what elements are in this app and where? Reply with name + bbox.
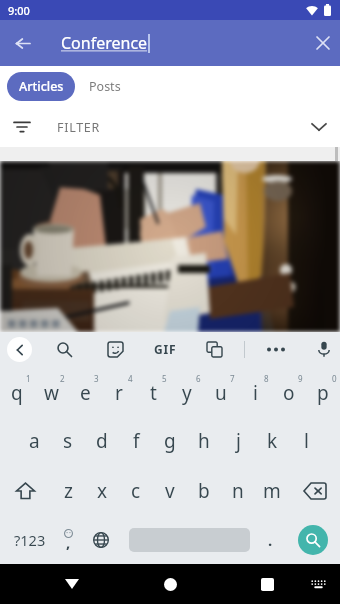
staticText: b	[198, 478, 210, 504]
button[interactable]: Space	[114, 518, 264, 562]
button[interactable]: m	[255, 466, 289, 516]
staticText: v	[165, 478, 175, 504]
staticText: k	[267, 428, 278, 454]
staticText: f	[133, 428, 140, 454]
button[interactable]: o	[272, 366, 306, 416]
button[interactable]: ?123	[7, 518, 52, 562]
staticText: 4	[128, 373, 133, 384]
button[interactable]: Home	[152, 566, 188, 602]
button[interactable]: FILTER	[0, 107, 340, 147]
button[interactable]: Recent apps	[249, 566, 285, 602]
staticText: h	[198, 428, 210, 454]
button[interactable]: t	[136, 366, 170, 416]
button[interactable]: Switch keyboard	[303, 569, 333, 599]
staticText: 3	[94, 373, 99, 384]
staticText: Posts	[89, 78, 121, 95]
staticText: i	[253, 380, 258, 406]
button[interactable]: q	[0, 366, 34, 416]
button[interactable]: Change language	[88, 518, 114, 562]
button[interactable]: GIF	[148, 336, 182, 362]
button[interactable]: d	[85, 416, 119, 466]
button[interactable]: b	[187, 466, 221, 516]
button[interactable]: z	[51, 466, 85, 516]
button[interactable]: Back	[54, 566, 90, 602]
button[interactable]: a	[17, 416, 51, 466]
button[interactable]: Backspace	[289, 466, 340, 516]
button[interactable]: c	[119, 466, 153, 516]
button[interactable]: n	[221, 466, 255, 516]
button[interactable]: j	[221, 416, 255, 466]
staticText: g	[164, 428, 176, 454]
button[interactable]: r	[102, 366, 136, 416]
staticText: s	[63, 428, 73, 454]
button[interactable]: i	[238, 366, 272, 416]
button[interactable]: Search	[298, 525, 328, 555]
button[interactable]: l	[289, 416, 323, 466]
staticText: d	[96, 428, 108, 454]
button[interactable]: v	[153, 466, 187, 516]
staticText: r	[115, 380, 123, 406]
button[interactable]: Translate	[202, 337, 226, 361]
button[interactable]: Collapse toolbar	[7, 337, 32, 362]
button[interactable]: Posts	[75, 72, 135, 101]
button[interactable]: w	[34, 366, 68, 416]
staticText: FILTER	[57, 119, 100, 136]
staticText: ,	[66, 532, 71, 552]
staticText: m	[263, 478, 281, 504]
button[interactable]: Search	[52, 337, 77, 362]
staticText: l	[304, 428, 309, 454]
button[interactable]: h	[187, 416, 221, 466]
staticText: o	[283, 380, 295, 406]
staticText: y	[182, 380, 192, 406]
staticText: Articles	[19, 78, 64, 95]
staticText: u	[215, 380, 227, 406]
staticText: w	[44, 380, 59, 406]
button[interactable]: u	[204, 366, 238, 416]
staticText: Conference	[61, 32, 148, 54]
button[interactable]: Back	[6, 26, 40, 60]
button[interactable]: f	[119, 416, 153, 466]
button[interactable]: y	[170, 366, 204, 416]
staticText: e	[80, 380, 91, 406]
staticText: a	[29, 428, 40, 454]
staticText: q	[11, 380, 23, 406]
button[interactable]: Emoji	[55, 518, 81, 562]
button[interactable]: x	[85, 466, 119, 516]
button[interactable]: s	[51, 416, 85, 466]
staticText: .	[268, 530, 273, 550]
button[interactable]: k	[255, 416, 289, 466]
button[interactable]: Clear search	[306, 26, 340, 60]
staticText: n	[232, 478, 244, 504]
staticText: ?123	[14, 530, 46, 550]
staticText: 9	[298, 373, 303, 384]
button[interactable]: g	[153, 416, 187, 466]
staticText: p	[317, 380, 329, 406]
staticText: GIF	[154, 341, 177, 357]
button[interactable]: More options	[264, 337, 288, 361]
button[interactable]: Voice input	[312, 337, 336, 361]
staticText: 8	[264, 373, 269, 384]
button[interactable]: Shift	[0, 466, 51, 516]
staticText: t	[150, 380, 157, 406]
staticText: 5	[162, 373, 167, 384]
staticText: c	[131, 478, 141, 504]
staticText: x	[97, 478, 108, 504]
staticText: 7	[230, 373, 235, 384]
button[interactable]: .	[257, 518, 283, 562]
button[interactable]: Articles	[7, 72, 75, 101]
staticText: 9:00	[8, 3, 30, 18]
button[interactable]: e	[68, 366, 102, 416]
staticText: 2	[60, 373, 65, 384]
staticText: z	[64, 478, 73, 504]
staticText: 6	[196, 373, 201, 384]
staticText: 0	[332, 373, 337, 384]
staticText: j	[236, 428, 241, 454]
button[interactable]: Stickers	[103, 337, 127, 361]
staticText: 1	[26, 373, 31, 384]
button[interactable]: p	[306, 366, 340, 416]
